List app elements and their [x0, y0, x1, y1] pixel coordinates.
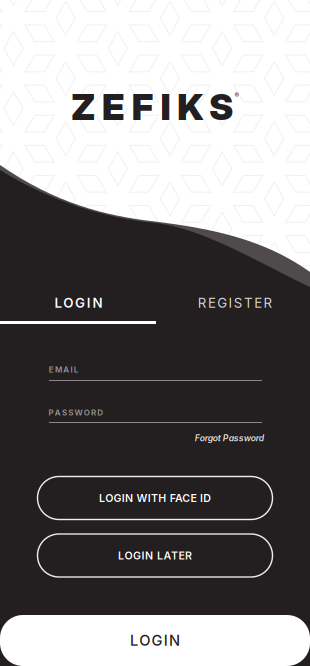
staticText: LOGIN	[54, 295, 102, 311]
button[interactable]: PASSWORD	[49, 406, 262, 425]
staticText: LOGIN WITH FACE ID	[99, 491, 211, 504]
button[interactable]: LOGIN	[0, 615, 310, 666]
button[interactable]: LOGIN WITH FACE ID	[37, 476, 272, 519]
staticText: REGISTER	[198, 295, 272, 311]
button[interactable]: LOGIN LATER	[37, 534, 272, 577]
staticText: LOGIN LATER	[118, 549, 192, 562]
button[interactable]: EMAIL	[49, 363, 262, 382]
staticText: Forgot Password	[195, 433, 264, 443]
button[interactable]: REGISTER	[157, 286, 310, 320]
staticText: EMAIL	[49, 365, 79, 374]
staticText: ZEFIKS	[71, 85, 233, 129]
staticText: LOGIN	[130, 632, 180, 649]
staticText: PASSWORD	[49, 408, 103, 417]
button[interactable]: LOGIN	[1, 286, 156, 320]
staticText: ®	[234, 91, 238, 99]
button[interactable]: Forgot Password	[179, 431, 279, 445]
